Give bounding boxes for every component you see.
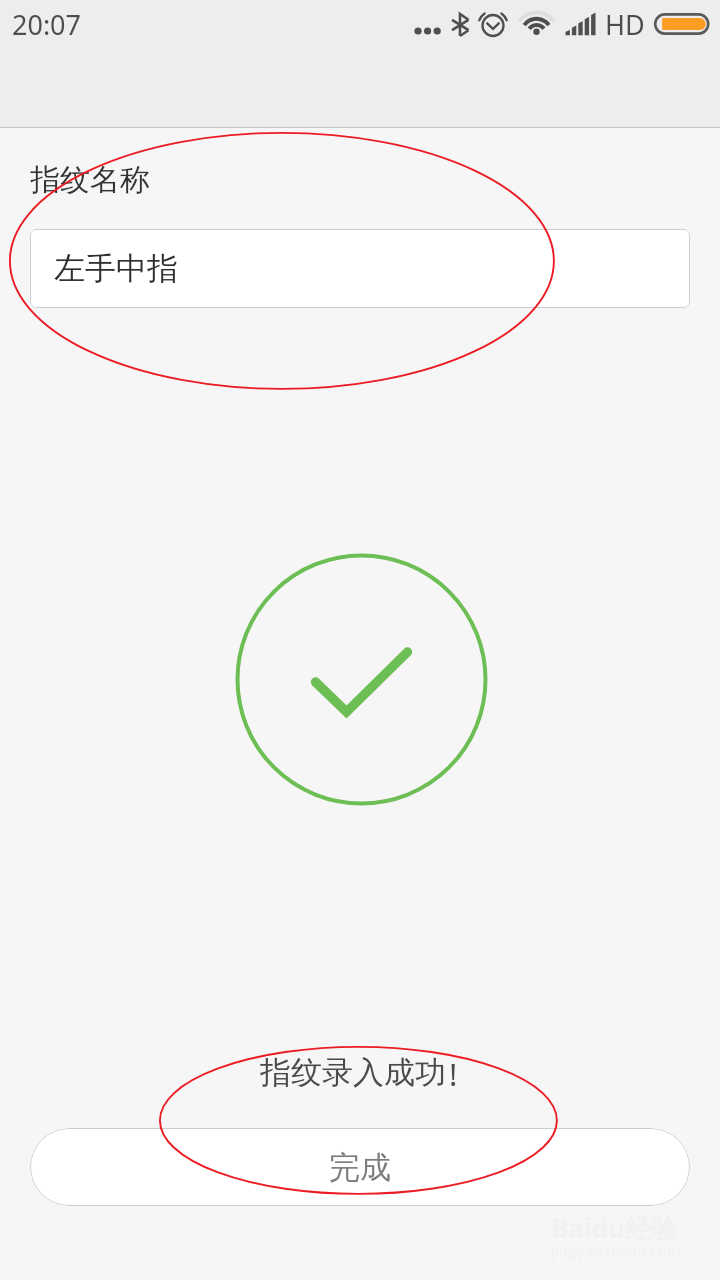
staticText: 20:07 bbox=[12, 6, 82, 43]
staticText: 左手中指 bbox=[54, 249, 178, 288]
staticText: 指纹名称 bbox=[30, 161, 150, 199]
staticText: 指纹录入成功 bbox=[260, 1053, 446, 1092]
button[interactable]: 左手中指 bbox=[30, 229, 690, 308]
button[interactable]: 完成 bbox=[30, 1128, 690, 1206]
staticText: 完成 bbox=[329, 1148, 391, 1187]
staticText: ! bbox=[449, 1053, 458, 1095]
staticText: HD bbox=[605, 6, 645, 43]
